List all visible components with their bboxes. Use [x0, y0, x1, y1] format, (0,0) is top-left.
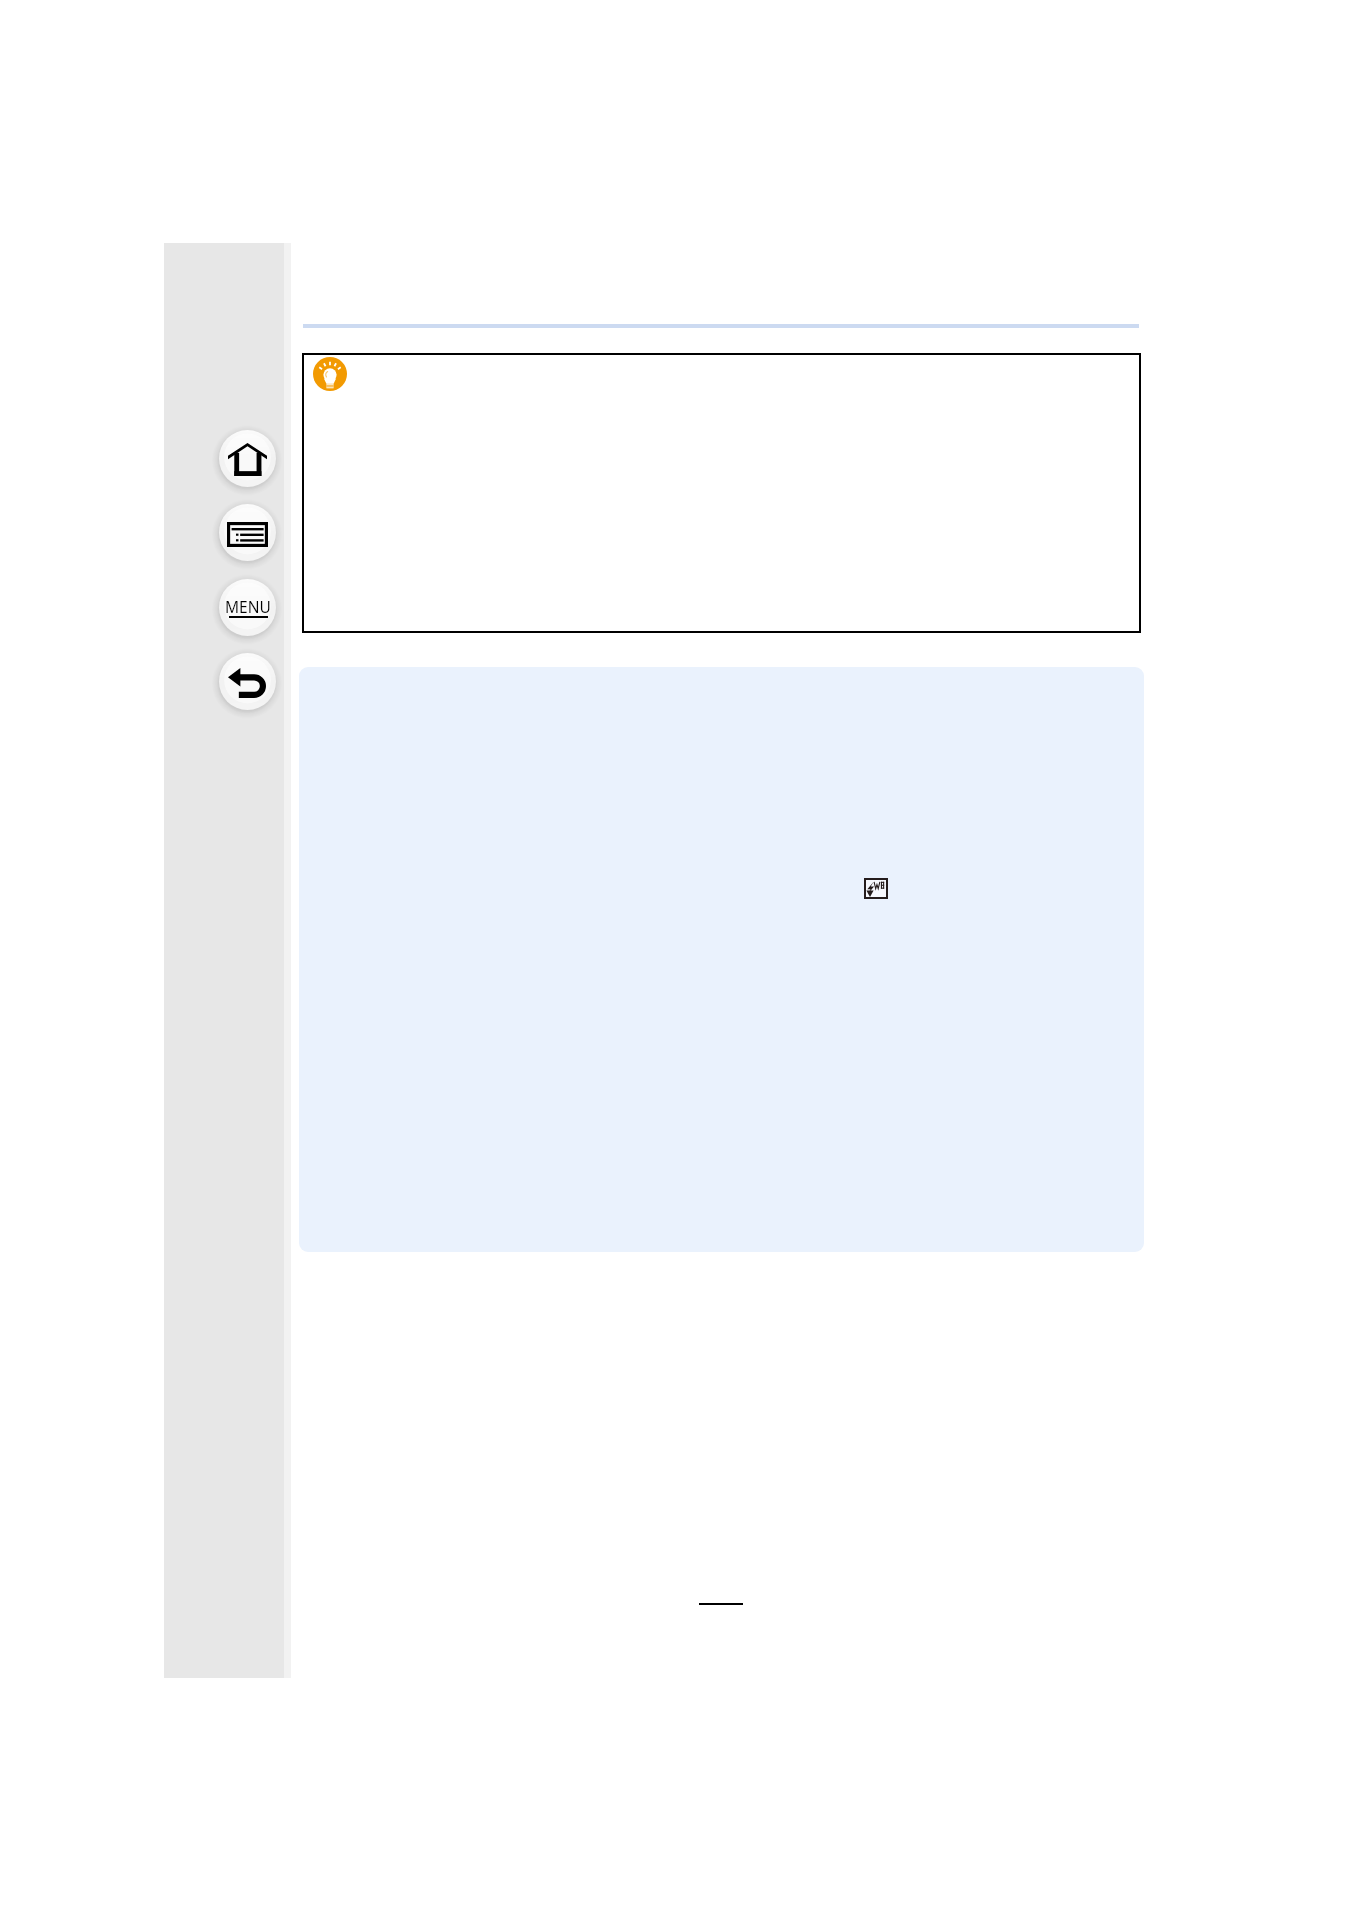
button[interactable]: Home [217, 428, 277, 488]
staticText: MENU [225, 596, 271, 617]
button[interactable]: Contents [217, 502, 277, 562]
button[interactable]: Back [217, 651, 277, 711]
button[interactable]: Menu [217, 577, 277, 637]
